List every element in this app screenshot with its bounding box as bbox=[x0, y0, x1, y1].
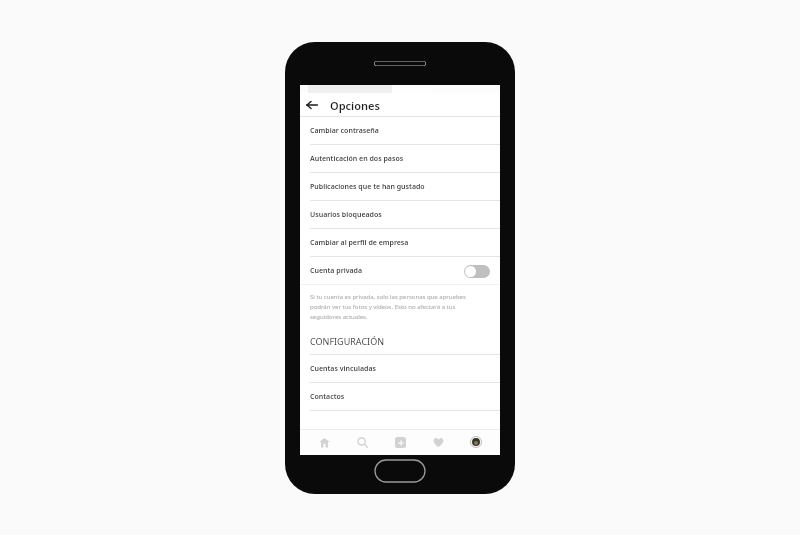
staticText: Publicaciones que te han gustado bbox=[310, 182, 425, 192]
staticText: Autenticación en dos pasos bbox=[310, 154, 404, 164]
staticText: Usuarios bloqueados bbox=[310, 210, 382, 220]
staticText: Cuentas vinculadas bbox=[310, 364, 376, 374]
button[interactable]: Cambiar contraseña bbox=[300, 117, 500, 145]
button[interactable]: Usuarios bloqueados bbox=[300, 201, 500, 229]
button[interactable]: Activity bbox=[424, 429, 452, 455]
staticText: CONFIGURACIÓN bbox=[310, 335, 385, 347]
staticText: Cuenta privada bbox=[310, 266, 363, 276]
staticText: Opciones bbox=[330, 98, 380, 113]
staticText: Contactos bbox=[310, 392, 345, 402]
button[interactable]: Profile bbox=[462, 429, 490, 455]
button[interactable]: Cuentas vinculadas bbox=[300, 355, 500, 383]
button[interactable]: Search bbox=[348, 429, 376, 455]
button[interactable]: Back bbox=[300, 93, 324, 117]
staticText: seguidores actuales. bbox=[310, 313, 368, 321]
button[interactable]: Cambiar al perfil de empresa bbox=[300, 229, 500, 257]
button[interactable]: Autenticación en dos pasos bbox=[300, 145, 500, 173]
staticText: Cambiar al perfil de empresa bbox=[310, 238, 409, 248]
staticText: podrán ver tus fotos y vídeos. Esto no a… bbox=[310, 303, 456, 311]
staticText: Cambiar contraseña bbox=[310, 126, 379, 136]
button[interactable]: Home bbox=[310, 429, 338, 455]
button[interactable]: Contactos bbox=[300, 383, 500, 411]
button[interactable]: Publicaciones que te han gustado bbox=[300, 173, 500, 201]
button[interactable]: Cuenta privada bbox=[300, 257, 500, 285]
button[interactable]: Add post bbox=[386, 429, 414, 455]
staticText: Si tu cuenta es privada, solo las person… bbox=[310, 293, 466, 301]
